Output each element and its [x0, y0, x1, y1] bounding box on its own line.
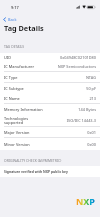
- staticText: 9:17: [11, 5, 19, 10]
- staticText: 144 Bytes: [45, 107, 96, 112]
- staticText: NTAG: [20, 75, 96, 80]
- staticText: Tag Details: [4, 23, 44, 33]
- button[interactable]: Minor Version: [0, 138, 100, 150]
- button[interactable]: UID: [0, 53, 100, 62]
- staticText: 50 pF: [26, 86, 96, 91]
- button[interactable]: IC Name: [0, 93, 100, 104]
- button[interactable]: Technologies supported: [0, 114, 100, 127]
- staticText: IC Name: [4, 96, 20, 101]
- staticText: IC Type: [4, 75, 18, 80]
- button[interactable]: Back: [2, 14, 18, 24]
- staticText: Signature verified with NXP public key: [4, 169, 68, 174]
- button[interactable]: IC Subtype: [0, 83, 100, 94]
- staticText: Back: [8, 17, 17, 22]
- staticText: IC Subtype: [4, 86, 24, 91]
- button[interactable]: Signature verified with NXP public key: [0, 166, 100, 177]
- staticText: Memory Information: [4, 107, 43, 112]
- staticText: TAG DETAILS: [4, 44, 25, 49]
- staticText: 213: [22, 96, 96, 101]
- staticText: 0x01: [32, 130, 96, 135]
- staticText: UID: [4, 55, 12, 60]
- button[interactable]: IC Type: [0, 72, 100, 83]
- staticText: NXP Semiconductors: [37, 64, 96, 69]
- staticText: NXP: [76, 195, 95, 207]
- staticText: ISO/IEC 14443-3: [31, 118, 96, 123]
- staticText: ORIGINALITY CHECK (ASYMMETRIC): [4, 158, 62, 163]
- button[interactable]: IC Manufacturer: [0, 61, 100, 72]
- staticText: Minor Version: [4, 142, 30, 147]
- staticText: Technologies supported: [4, 116, 29, 126]
- staticText: IC Manufacturer: [4, 64, 35, 69]
- button[interactable]: Major Version: [0, 127, 100, 138]
- staticText: 0x04948C02101D80: [14, 55, 96, 60]
- button[interactable]: Memory Information: [0, 104, 100, 115]
- staticText: Major Version: [4, 130, 30, 135]
- staticText: 0x00: [32, 142, 96, 147]
